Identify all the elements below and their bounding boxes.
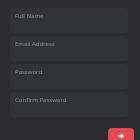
staticText: Email Address: [15, 40, 55, 48]
button[interactable]: Email Address: [10, 36, 128, 61]
button[interactable]: Full Name: [10, 8, 128, 33]
button[interactable]: Password: [10, 64, 128, 89]
button[interactable]: Confirm Password: [10, 92, 128, 117]
button[interactable]: Submit: [108, 128, 134, 140]
staticText: Confirm Password: [15, 96, 67, 104]
staticText: Password: [15, 68, 43, 76]
staticText: Full Name: [15, 12, 44, 20]
